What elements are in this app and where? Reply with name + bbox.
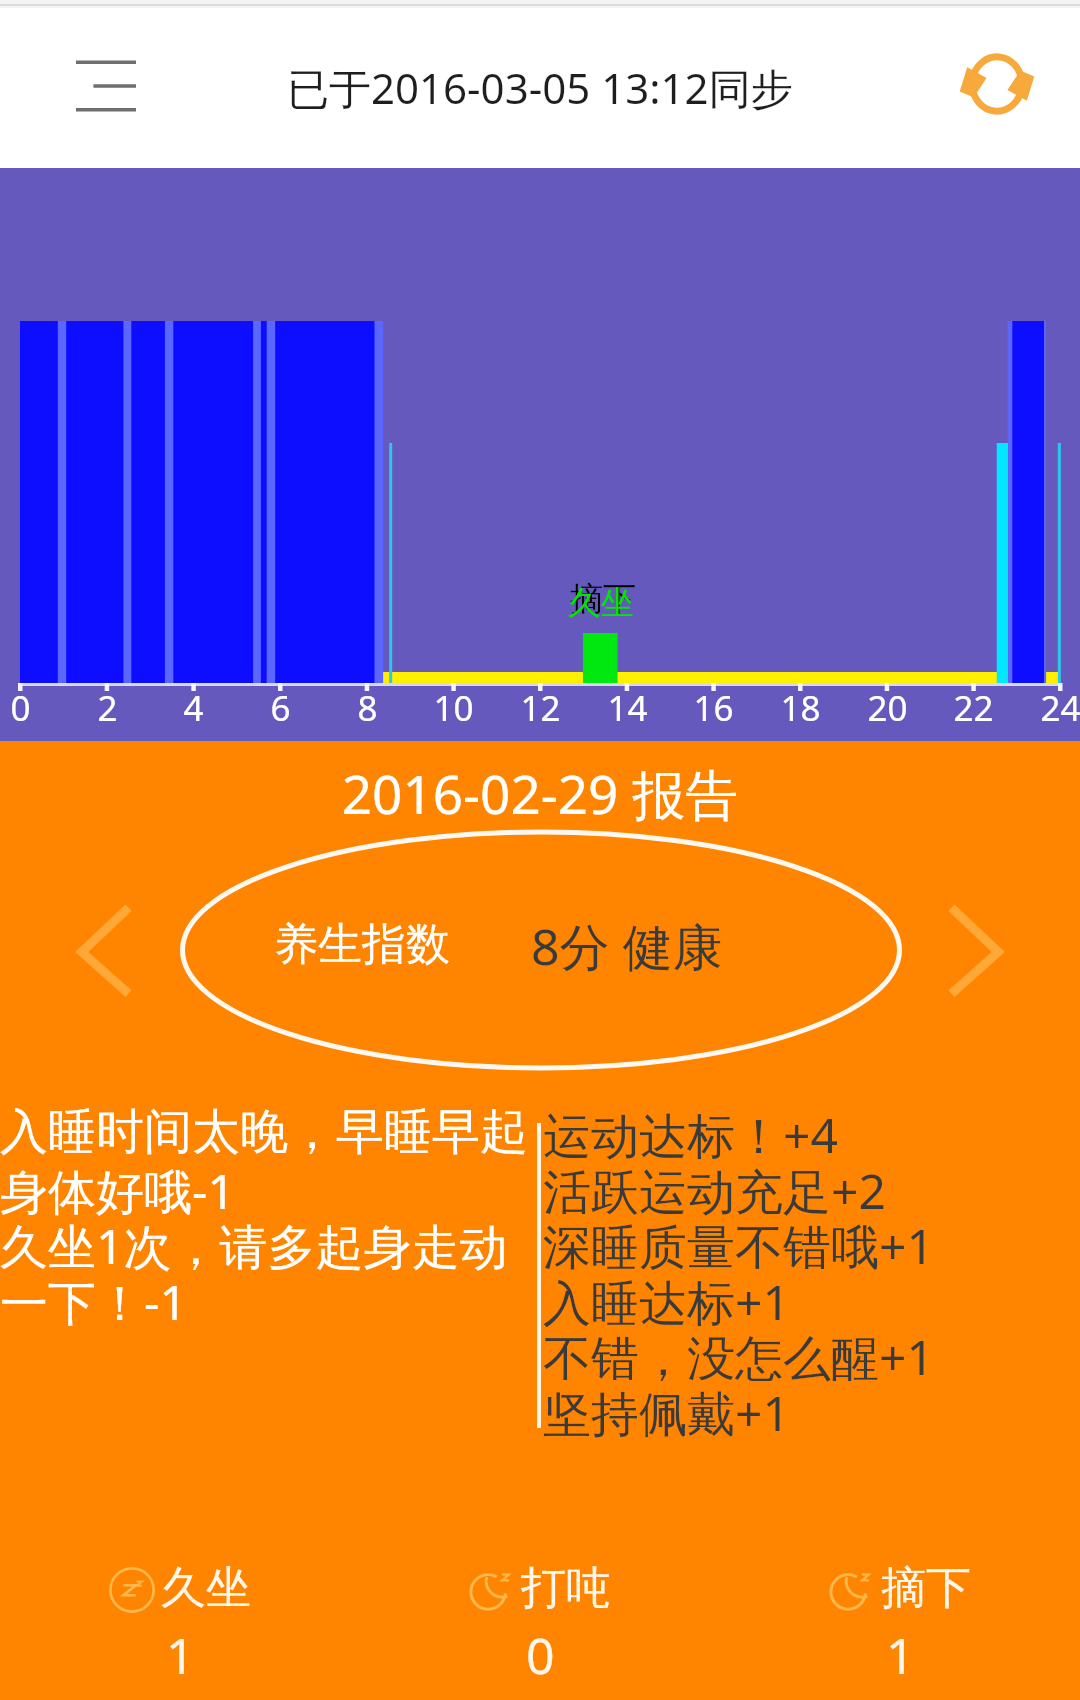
staticText: 1 bbox=[166, 1621, 195, 1689]
staticText: 入睡时间太晚，早睡早起 bbox=[0, 1102, 528, 1162]
staticText: 14 bbox=[607, 684, 648, 732]
staticText: 活跃运动充足+2 bbox=[543, 1158, 886, 1224]
staticText: 运动达标！+4 bbox=[543, 1102, 838, 1168]
staticText: 坚持佩戴+1 bbox=[543, 1380, 790, 1446]
staticText: 2 bbox=[97, 684, 118, 732]
staticText: 一下！-1 bbox=[0, 1269, 187, 1335]
button[interactable]: 摘下 bbox=[720, 1560, 1080, 1689]
staticText: 4 bbox=[183, 684, 204, 732]
staticText: 8 bbox=[357, 684, 378, 732]
staticText: 入睡达标+1 bbox=[543, 1269, 790, 1335]
button[interactable]: Menu bbox=[46, 26, 166, 146]
button[interactable]: Sync bbox=[942, 29, 1052, 139]
staticText: 0 bbox=[526, 1621, 555, 1689]
staticText: 6 bbox=[270, 684, 291, 732]
staticText: 2016-02-29 报告 bbox=[0, 757, 1080, 829]
staticText: 摘下 bbox=[570, 578, 636, 620]
staticText: 0 bbox=[10, 684, 31, 732]
staticText: 不错，没怎么醒+1 bbox=[543, 1324, 934, 1390]
staticText: 摘下 bbox=[881, 1560, 971, 1617]
staticText: 已于2016-03-05 13:12同步 bbox=[287, 59, 793, 116]
staticText: 久坐1次，请多起身走动 bbox=[0, 1213, 508, 1279]
staticText: 深睡质量不错哦+1 bbox=[543, 1213, 934, 1279]
staticText: 18 bbox=[780, 684, 821, 732]
staticText: 24 bbox=[1040, 684, 1080, 732]
staticText: 打吨 bbox=[521, 1560, 611, 1617]
button[interactable]: 打吨 bbox=[360, 1560, 720, 1689]
staticText: 久坐 bbox=[568, 582, 634, 624]
staticText: 16 bbox=[693, 684, 734, 732]
staticText: 22 bbox=[953, 684, 994, 732]
staticText: 20 bbox=[867, 684, 908, 732]
button[interactable]: 久坐 bbox=[0, 1560, 360, 1689]
staticText: 1 bbox=[886, 1621, 915, 1689]
staticText: 身体好哦-1 bbox=[0, 1158, 235, 1224]
staticText: 12 bbox=[520, 684, 561, 732]
staticText: 8分 健康 bbox=[531, 912, 723, 980]
staticText: 10 bbox=[433, 684, 474, 732]
staticText: 久坐 bbox=[161, 1560, 251, 1617]
staticText: 养生指数 bbox=[274, 917, 450, 972]
